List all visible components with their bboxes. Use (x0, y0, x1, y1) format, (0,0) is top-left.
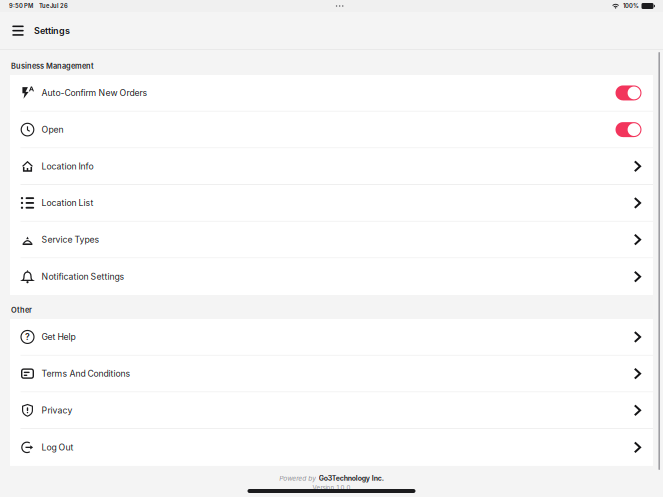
staticText: Powered by (279, 474, 316, 482)
staticText: Tue Jul 26 (39, 2, 68, 9)
staticText: Location Info (41, 161, 93, 171)
staticText: Business Management (11, 61, 94, 70)
button[interactable]: Location Info (10, 148, 653, 185)
staticText: 100% (623, 2, 639, 9)
button[interactable]: Service Types (10, 222, 653, 258)
staticText: 9:50 PM (9, 2, 33, 9)
button[interactable]: Log Out (10, 429, 653, 466)
staticText: Version 1.0.0 (312, 484, 350, 491)
button[interactable]: ? (10, 319, 653, 356)
staticText: Get Help (41, 332, 75, 342)
staticText: Service Types (41, 234, 99, 245)
staticText: Other (11, 305, 32, 314)
staticText: Location List (41, 198, 93, 208)
staticText: Log Out (41, 442, 73, 453)
button[interactable]: Privacy (10, 392, 653, 429)
staticText: ? (25, 331, 30, 342)
staticText: Privacy (41, 405, 72, 416)
staticText: Terms And Conditions (41, 368, 130, 379)
button[interactable]: Menu (8, 21, 28, 41)
button[interactable]: Auto-Confirm New Orders (10, 75, 653, 112)
staticText: Notification Settings (41, 271, 124, 282)
button[interactable]: Open (10, 112, 653, 148)
button[interactable]: Terms And Conditions (10, 356, 653, 392)
button[interactable]: Location List (10, 185, 653, 222)
staticText: Auto-Confirm New Orders (41, 88, 147, 98)
staticText: Open (41, 124, 63, 135)
staticText: Settings (34, 25, 70, 36)
button[interactable]: Notification Settings (10, 258, 653, 295)
staticText: Go3Technology Inc. (319, 474, 384, 483)
